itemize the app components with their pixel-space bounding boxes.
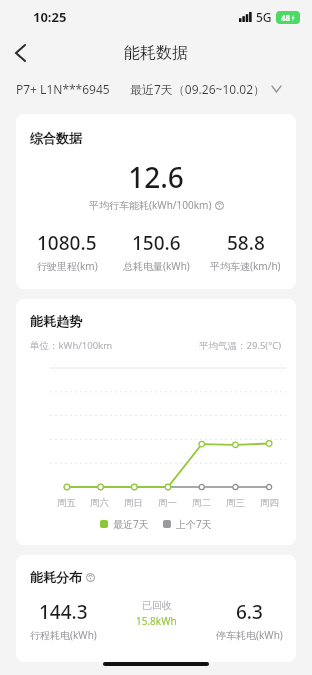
staticText: 58.8 [227, 230, 265, 256]
staticText: 周二 [192, 497, 211, 509]
staticText: 12.6 [16, 158, 296, 196]
staticText: 停车耗电(kWh) [216, 628, 283, 642]
staticText: 周四 [260, 497, 279, 509]
staticText: 平均车速(km/h) [210, 259, 281, 273]
staticText: 单位：kWh/100km [30, 339, 113, 352]
staticText: 150.6 [132, 230, 181, 256]
staticText: P7+ L1N***6945 [16, 81, 110, 97]
staticText: 周五 [57, 497, 76, 509]
staticText: 平均气温：29.5(°C) [199, 339, 282, 352]
staticText: 144.3 [39, 599, 88, 625]
staticText: 10:25 [33, 8, 67, 26]
staticText: 1080.5 [37, 230, 97, 256]
staticText: 行程耗电(kWh) [30, 628, 97, 642]
staticText: 48 [281, 12, 291, 23]
staticText: 周六 [90, 497, 109, 509]
staticText: 周三 [226, 497, 245, 509]
button[interactable]: P7+ L1N***6945 [16, 81, 110, 97]
staticText: 周一 [158, 497, 177, 509]
staticText: 总耗电量(kWh) [123, 259, 190, 273]
staticText: 最近7天（09.26~10.02） [130, 81, 266, 97]
button[interactable]: Back [0, 34, 40, 72]
staticText: 平均行车能耗(kWh/100km) [89, 198, 212, 212]
staticText: 上个7天 [176, 517, 212, 531]
staticText: 15.8kWh [136, 614, 177, 628]
staticText: 能耗分布 [30, 569, 82, 585]
button[interactable]: 最近7天（09.26~10.02） [130, 81, 312, 97]
staticText: 最近7天 [113, 517, 149, 531]
staticText: 综合数据 [30, 130, 82, 146]
staticText: 5G [256, 9, 272, 25]
staticText: 能耗数据 [124, 43, 188, 63]
staticText: 行驶里程(km) [37, 259, 98, 273]
staticText: 已回收 [142, 599, 172, 612]
staticText: 周日 [124, 497, 143, 509]
staticText: 能耗趋势 [30, 313, 82, 329]
staticText: 6.3 [236, 599, 263, 625]
